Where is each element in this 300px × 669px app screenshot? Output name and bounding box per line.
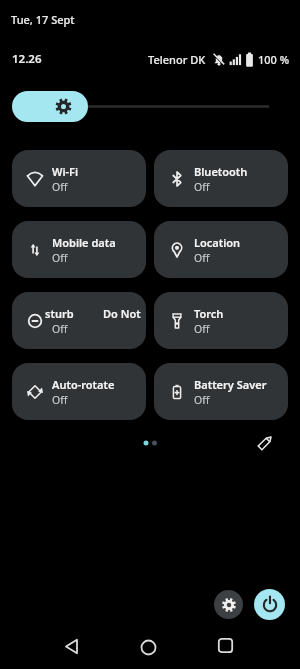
staticText: Torch	[194, 306, 224, 321]
button[interactable]: Auto-rotate	[12, 363, 146, 420]
button[interactable]: Wi-Fi	[12, 150, 146, 207]
staticText: Off	[194, 393, 210, 407]
button[interactable]: Mobile data	[12, 221, 146, 278]
button[interactable]	[130, 629, 167, 666]
staticText: Tue, 17 Sept	[11, 12, 75, 27]
button[interactable]: Torch	[154, 292, 288, 349]
button[interactable]	[207, 627, 244, 664]
button[interactable]: Location	[154, 221, 288, 278]
staticText: Battery Saver	[194, 377, 267, 392]
button[interactable]: Bluetooth	[154, 150, 288, 207]
staticText: Wi-Fi	[52, 164, 79, 179]
button[interactable]	[214, 590, 243, 619]
staticText: sturb	[45, 306, 74, 321]
staticText: Off	[194, 322, 210, 336]
button[interactable]	[251, 429, 279, 457]
staticText: Do Not	[103, 306, 141, 321]
staticText: Off	[52, 251, 68, 265]
staticText: Off	[194, 180, 210, 194]
staticText: Telenor DK	[148, 52, 206, 67]
staticText: Bluetooth	[194, 164, 248, 179]
button[interactable]	[54, 628, 91, 665]
button[interactable]	[254, 589, 285, 620]
staticText: Location	[194, 235, 241, 250]
staticText: Off	[52, 180, 68, 194]
staticText: Auto-rotate	[52, 377, 115, 392]
staticText: Off	[52, 322, 68, 336]
button[interactable]	[12, 91, 88, 122]
staticText: 100 %	[258, 52, 290, 67]
staticText: Off	[52, 393, 68, 407]
button[interactable]: Battery Saver	[154, 363, 288, 420]
staticText: 12.26	[12, 51, 42, 67]
button[interactable]: sturb	[12, 292, 146, 349]
staticText: Mobile data	[52, 235, 116, 250]
staticText: Off	[194, 251, 210, 265]
